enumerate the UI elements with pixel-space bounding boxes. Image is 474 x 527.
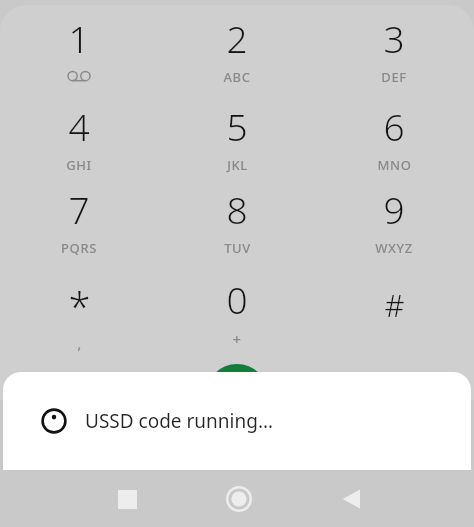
button[interactable]: 8 (171, 183, 303, 263)
staticText: + (232, 329, 242, 349)
staticText: PQRS (61, 239, 97, 257)
staticText: DEF (381, 68, 407, 86)
button[interactable]: * (13, 273, 145, 353)
staticText: # (384, 284, 405, 326)
staticText: WXYZ (375, 239, 413, 257)
button[interactable]: USSD code running… (3, 372, 471, 470)
staticText: 5 (226, 101, 248, 151)
staticText: GHI (66, 156, 92, 174)
staticText: , (77, 333, 82, 353)
button[interactable]: 6 (328, 100, 460, 180)
staticText: 6 (383, 101, 405, 151)
button[interactable]: 4 (13, 100, 145, 180)
button[interactable]: 5 (171, 100, 303, 180)
staticText: 0 (226, 274, 248, 324)
button[interactable]: 7 (13, 183, 145, 263)
button[interactable]: 3 (328, 12, 460, 92)
button[interactable]: Call (206, 364, 268, 426)
button[interactable]: 2 (171, 12, 303, 92)
staticText: 1 (68, 13, 90, 63)
staticText: 7 (68, 184, 90, 234)
staticText: 3 (383, 13, 405, 63)
staticText: USSD code running… (85, 408, 273, 434)
staticText: JKL (227, 156, 248, 174)
staticText: 8 (226, 184, 248, 234)
button[interactable]: Home (216, 476, 262, 522)
button[interactable]: 1 (13, 12, 145, 92)
button[interactable]: # (328, 273, 460, 353)
button[interactable]: 9 (328, 183, 460, 263)
staticText: * (68, 279, 91, 333)
button[interactable]: Back (328, 476, 374, 522)
button[interactable]: 0 (171, 273, 303, 353)
staticText: 9 (383, 184, 405, 234)
staticText: MNO (377, 156, 412, 174)
staticText: 4 (68, 101, 90, 151)
staticText: 2 (226, 13, 248, 63)
staticText: ABC (223, 68, 251, 86)
staticText: TUV (224, 239, 251, 257)
button[interactable]: Recent apps (104, 476, 150, 522)
